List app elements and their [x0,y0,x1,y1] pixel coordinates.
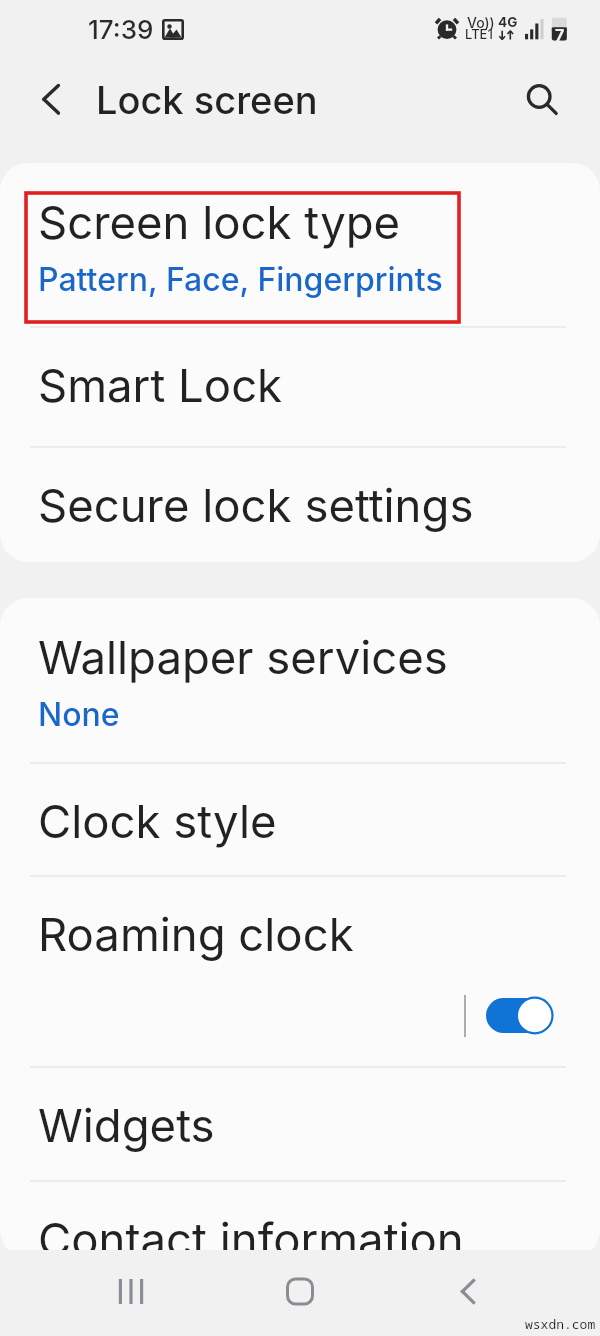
staticText: 17:39 [88,14,154,45]
staticText: 4G [498,14,518,30]
button[interactable]: Navigate up [23,72,80,129]
button[interactable]: Widgets [0,1066,600,1180]
button[interactable]: Roaming clock [486,998,552,1033]
staticText: Contact information [38,1212,464,1258]
button[interactable]: Wallpaper services [0,598,600,762]
staticText: Lock screen [96,77,318,123]
staticText: Smart Lock [38,358,283,413]
staticText: Wallpaper services [38,630,448,685]
staticText: Roaming clock [38,907,354,962]
button[interactable]: Contact information [0,1180,600,1258]
button[interactable]: Clock style [0,762,600,875]
button[interactable]: Back [413,1250,524,1336]
staticText: Widgets [38,1098,215,1153]
staticText: Secure lock settings [38,478,474,533]
button[interactable]: Search [512,69,569,126]
button[interactable]: Secure lock settings [0,446,600,562]
staticText: wsxdn.com [525,1315,596,1333]
staticText: None [38,695,120,734]
staticText: Vo)) [467,14,495,31]
button[interactable]: Smart Lock [0,326,600,446]
button[interactable]: Roaming clock [0,875,600,1066]
staticText: LTE1 [465,26,493,42]
staticText: 7 [555,25,565,44]
button[interactable]: Screen lock type [0,163,600,326]
staticText: Screen lock type [38,195,401,250]
staticText: Pattern, Face, Fingerprints [38,260,443,299]
button[interactable]: Home [244,1250,355,1336]
button[interactable]: Recent apps [75,1250,186,1336]
staticText: Clock style [38,794,277,849]
